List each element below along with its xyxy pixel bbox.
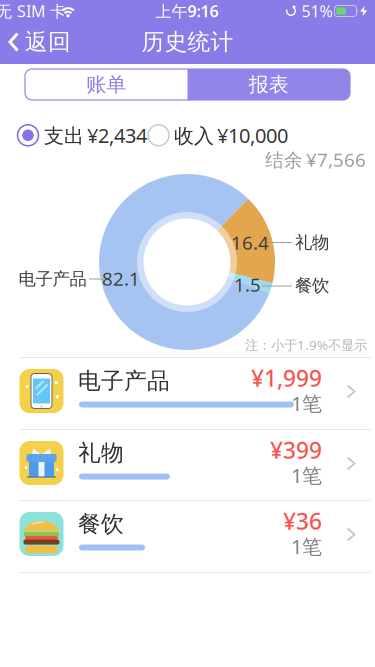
staticText: 收入 ¥10,000 [174, 122, 288, 149]
staticText: 餐饮 [295, 275, 329, 296]
staticText: 电子产品 [78, 367, 170, 395]
button[interactable]: 电子产品 [0, 358, 375, 429]
staticText: 1笔 [291, 390, 322, 417]
staticText: 1笔 [291, 462, 322, 489]
button[interactable]: 礼物 [0, 430, 375, 500]
staticText: 返回 [25, 28, 71, 56]
staticText: ¥36 [283, 506, 322, 536]
staticText: 82.1 [102, 266, 140, 291]
staticText: 结余 ¥7,566 [265, 147, 366, 172]
staticText: ¥399 [270, 435, 322, 465]
button[interactable]: 收入 [148, 122, 288, 149]
staticText: 1.5 [234, 272, 261, 297]
staticText: 51% [301, 0, 332, 22]
staticText: 礼物 [295, 232, 329, 253]
staticText: 礼物 [78, 439, 124, 467]
staticText: 电子产品 [18, 268, 86, 290]
button[interactable]: 返回 [0, 20, 71, 64]
button[interactable]: 支出 [17, 122, 147, 149]
staticText: 无 SIM 卡 [0, 0, 66, 22]
staticText: ¥1,999 [251, 363, 322, 393]
button[interactable]: 餐饮 [0, 501, 375, 572]
staticText: 支出 ¥2,434 [44, 122, 147, 149]
staticText: 账单 [86, 72, 126, 97]
staticText: 上午9:16 [155, 0, 218, 22]
staticText: 1笔 [291, 533, 322, 560]
button[interactable]: 报表 [187, 69, 350, 100]
staticText: 历史统计 [141, 28, 233, 56]
staticText: 16.4 [231, 230, 269, 255]
staticText: 注：小于1.9%不显示 [245, 336, 367, 354]
staticText: 报表 [249, 72, 289, 97]
staticText: 餐饮 [78, 510, 124, 538]
button[interactable]: 账单 [25, 69, 187, 100]
